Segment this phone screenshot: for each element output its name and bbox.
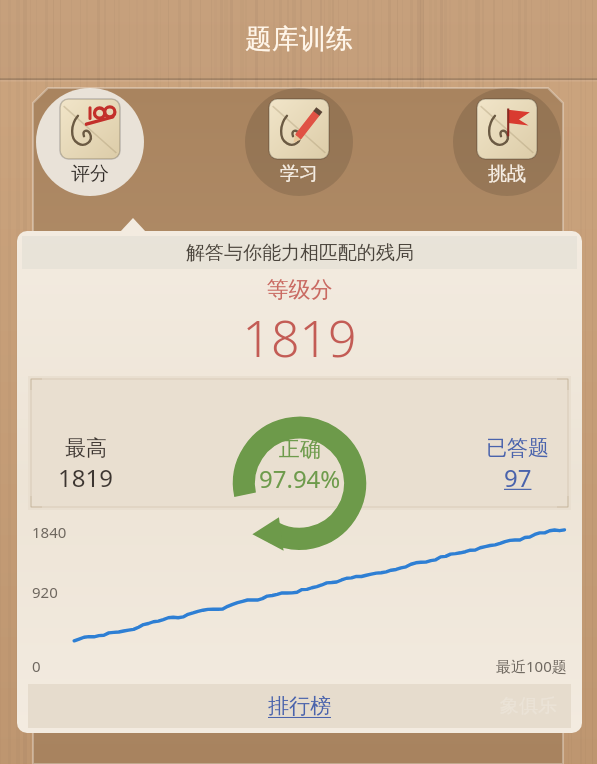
staticText: 评分 bbox=[71, 162, 109, 186]
staticText: 等级分 bbox=[20, 276, 579, 304]
staticText: 最近100题 bbox=[496, 656, 567, 676]
staticText: 最高 bbox=[65, 435, 107, 461]
button[interactable]: 已答题 bbox=[486, 435, 549, 494]
staticText: 1819 bbox=[58, 461, 113, 494]
button[interactable]: 学习 bbox=[245, 88, 353, 196]
button[interactable]: 挑战 bbox=[453, 88, 561, 196]
staticText: 97.94% bbox=[259, 462, 341, 495]
staticText: 正确 bbox=[279, 436, 321, 462]
staticText: 920 bbox=[32, 582, 58, 602]
staticText: 解答与你能力相匹配的残局 bbox=[186, 241, 414, 265]
staticText: 题库训练 bbox=[245, 22, 353, 56]
button[interactable]: 排行榜 bbox=[28, 684, 571, 728]
staticText: 1840 bbox=[32, 522, 67, 542]
staticText: 挑战 bbox=[488, 162, 526, 186]
staticText: 象俱乐 bbox=[500, 694, 557, 718]
button[interactable]: 评分 bbox=[36, 88, 144, 196]
staticText: 1819 bbox=[20, 304, 579, 372]
staticText: 已答题 bbox=[486, 435, 549, 461]
staticText: 学习 bbox=[280, 162, 318, 186]
staticText: 97 bbox=[504, 461, 532, 494]
staticText: 排行榜 bbox=[268, 693, 331, 719]
staticText: 0 bbox=[32, 656, 41, 676]
